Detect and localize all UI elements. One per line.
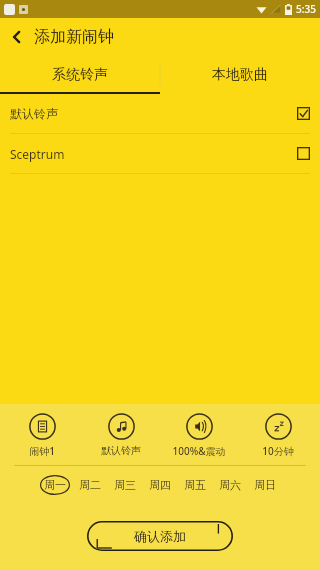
button[interactable]: 周六: [215, 474, 245, 496]
staticText: 默认铃声: [101, 444, 141, 457]
staticText: 确认添加: [134, 528, 186, 544]
button[interactable]: 默认铃声: [0, 94, 320, 134]
button[interactable]: 本地歌曲: [160, 56, 320, 94]
button[interactable]: 系统铃声: [0, 56, 160, 94]
staticText: 10分钟: [262, 444, 294, 458]
staticText: 5:35: [296, 2, 316, 16]
staticText: Sceptrum: [10, 146, 65, 162]
staticText: 默认铃声: [10, 106, 58, 121]
button[interactable]: 周四: [145, 474, 175, 496]
button[interactable]: 确认添加: [87, 521, 233, 551]
staticText: 系统铃声: [52, 66, 108, 84]
button[interactable]: Back: [0, 20, 34, 54]
staticText: 闹钟1: [29, 444, 55, 458]
button[interactable]: 周五: [180, 474, 210, 496]
staticText: 周四: [149, 478, 171, 492]
button[interactable]: 10分钟: [241, 413, 315, 458]
button[interactable]: 周一: [40, 474, 70, 496]
staticText: 周五: [184, 478, 206, 492]
staticText: 周一: [44, 478, 66, 492]
staticText: 本地歌曲: [212, 66, 268, 84]
staticText: 100%&震动: [172, 444, 226, 458]
button[interactable]: 周三: [110, 474, 140, 496]
staticText: 周二: [79, 478, 101, 492]
button[interactable]: 周二: [75, 474, 105, 496]
button[interactable]: 周日: [250, 474, 280, 496]
staticText: 周日: [254, 478, 276, 492]
button[interactable]: 闹钟1: [5, 413, 79, 458]
staticText: 周三: [114, 478, 136, 492]
button[interactable]: Sceptrum: [0, 134, 320, 174]
button[interactable]: 100%&震动: [162, 413, 236, 458]
button[interactable]: 默认铃声: [84, 413, 158, 457]
staticText: 周六: [219, 478, 241, 492]
staticText: 添加新闹钟: [34, 27, 114, 47]
